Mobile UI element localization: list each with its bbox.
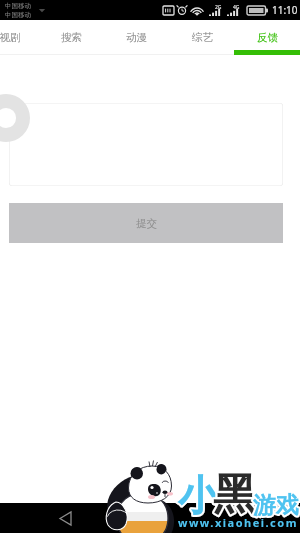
staticText: 游戏 <box>253 491 299 520</box>
staticText: 动漫 <box>126 31 147 44</box>
button[interactable]: 动漫 <box>103 20 169 55</box>
staticText: 电视剧 <box>0 31 21 44</box>
staticText: 小 <box>178 471 219 523</box>
staticText: 中国移动 <box>5 2 31 10</box>
staticText: 4G <box>233 4 240 11</box>
staticText: 黑 <box>213 468 256 522</box>
staticText: 游戏 <box>253 491 299 520</box>
button[interactable]: 反馈 <box>234 20 300 55</box>
button[interactable]: 搜索 <box>38 20 104 55</box>
staticText: 提交 <box>136 217 157 230</box>
button[interactable] <box>9 103 283 186</box>
staticText: 中国移动 <box>5 11 31 19</box>
button[interactable]: 综艺 <box>169 20 235 55</box>
staticText: www.xiaohei.com <box>178 515 298 530</box>
button[interactable]: 电视剧 <box>0 20 38 55</box>
staticText: 搜索 <box>61 31 82 44</box>
staticText: 反馈 <box>257 31 278 44</box>
staticText: 小 <box>178 471 219 523</box>
staticText: 2G <box>215 4 222 11</box>
staticText: 黑 <box>213 468 256 522</box>
button[interactable]: Back <box>51 504 79 532</box>
staticText: 11:10 <box>272 3 298 17</box>
staticText: 综艺 <box>192 31 213 44</box>
button[interactable]: 提交 <box>9 203 283 243</box>
